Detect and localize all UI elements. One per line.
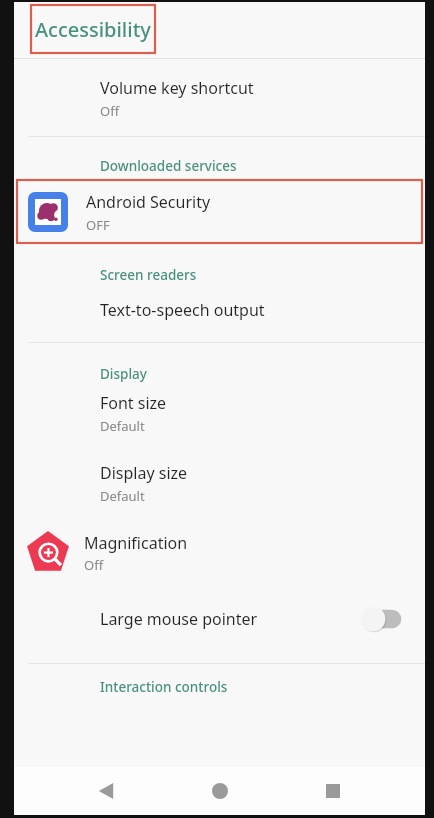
other: Android Security app icon <box>28 192 68 232</box>
staticText: Default <box>100 417 145 435</box>
button[interactable]: Home <box>198 769 242 813</box>
staticText: Accessibility <box>35 16 151 43</box>
staticText: Font size <box>100 392 167 414</box>
button[interactable]: Display size <box>14 457 425 509</box>
staticText: Volume key shortcut <box>100 77 254 99</box>
button[interactable]: Volume key shortcut <box>14 72 425 124</box>
staticText: Android Security <box>86 191 211 213</box>
staticText: Off <box>84 556 104 574</box>
other: Magnification <box>26 531 70 575</box>
button[interactable]: Recent apps <box>311 769 355 813</box>
staticText: Large mouse pointer <box>100 608 361 630</box>
staticText: Display size <box>100 462 188 484</box>
staticText: Magnification <box>84 532 188 554</box>
staticText: Interaction controls <box>100 678 228 696</box>
staticText: OFF <box>86 216 110 234</box>
staticText: Screen readers <box>100 266 197 284</box>
staticText: Downloaded services <box>100 157 237 175</box>
button[interactable]: Text-to-speech output <box>14 288 425 332</box>
staticText: Default <box>100 487 145 505</box>
staticText: Text-to-speech output <box>100 299 265 321</box>
staticText: Off <box>100 102 120 120</box>
button[interactable]: Large mouse pointer toggle, off <box>361 606 403 632</box>
button[interactable]: Android Security app icon <box>14 179 425 245</box>
button[interactable]: Magnification <box>14 525 425 581</box>
button[interactable]: Large mouse pointer <box>14 597 425 641</box>
button[interactable]: Font size <box>14 387 425 439</box>
button[interactable]: Back <box>84 769 128 813</box>
staticText: Display <box>100 365 147 383</box>
